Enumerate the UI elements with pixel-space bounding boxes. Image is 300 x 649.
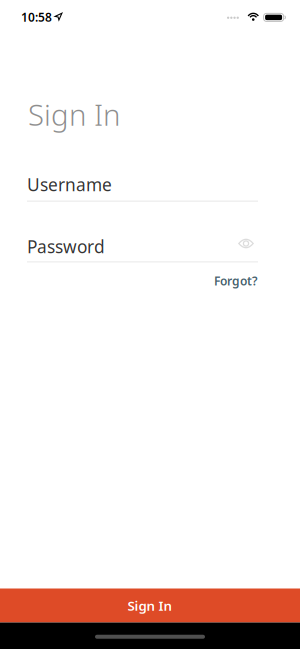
staticText: Sign In	[127, 597, 172, 614]
staticText: Password	[27, 235, 105, 258]
button[interactable]: Username	[27, 173, 258, 202]
button[interactable]: Sign In	[0, 588, 300, 622]
staticText: Sign In	[28, 95, 120, 134]
button[interactable]: Password	[27, 235, 258, 262]
staticText: Username	[27, 173, 112, 196]
staticText: Forgot?	[214, 273, 258, 289]
staticText: 10:58	[21, 9, 52, 25]
button[interactable]: Forgot?	[214, 273, 258, 289]
button[interactable]: Show password	[238, 238, 254, 248]
